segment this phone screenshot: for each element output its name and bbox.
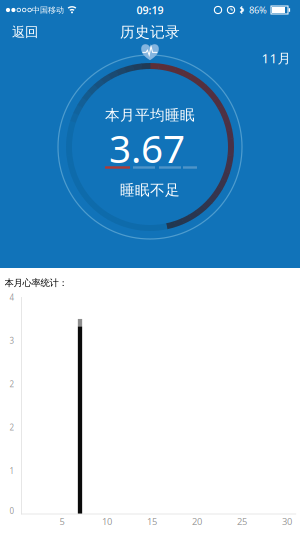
staticText: 5 — [59, 515, 64, 528]
staticText: 11月 — [261, 49, 290, 67]
staticText: 2 — [9, 379, 14, 389]
staticText: 本月心率统计： — [4, 277, 67, 289]
staticText: 睡眠不足 — [120, 181, 180, 199]
staticText: 中国移动 — [32, 5, 64, 15]
staticText: 1 — [9, 466, 14, 476]
button[interactable]: 返回 — [3, 20, 47, 44]
staticText: 86% — [249, 4, 267, 16]
staticText: 2 — [9, 422, 14, 433]
staticText: 历史记录 — [120, 23, 180, 41]
staticText: 09:19 — [136, 3, 163, 17]
staticText: 10 — [102, 515, 112, 528]
staticText: 15 — [147, 515, 157, 528]
staticText: 20 — [192, 515, 202, 528]
staticText: 3 — [9, 335, 14, 346]
staticText: 25 — [237, 515, 247, 528]
staticText: 0 — [9, 506, 14, 516]
staticText: 3.67 — [109, 122, 185, 174]
staticText: 返回 — [12, 24, 38, 40]
staticText: 30 — [282, 515, 292, 528]
staticText: 4 — [9, 292, 14, 303]
button[interactable]: 11月 — [256, 48, 296, 68]
staticText: 本月平均睡眠 — [105, 106, 195, 124]
